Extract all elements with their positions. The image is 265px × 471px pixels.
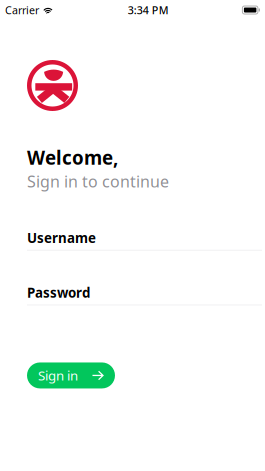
staticText: 3:34 PM bbox=[128, 3, 169, 17]
staticText: Sign in to continue bbox=[27, 171, 169, 192]
button[interactable]: Sign in bbox=[27, 362, 115, 388]
staticText: Welcome, bbox=[27, 145, 118, 170]
staticText: Username bbox=[27, 229, 96, 247]
staticText: Password bbox=[27, 284, 90, 301]
staticText: Carrier bbox=[5, 3, 39, 17]
staticText: Sign in bbox=[38, 367, 78, 384]
